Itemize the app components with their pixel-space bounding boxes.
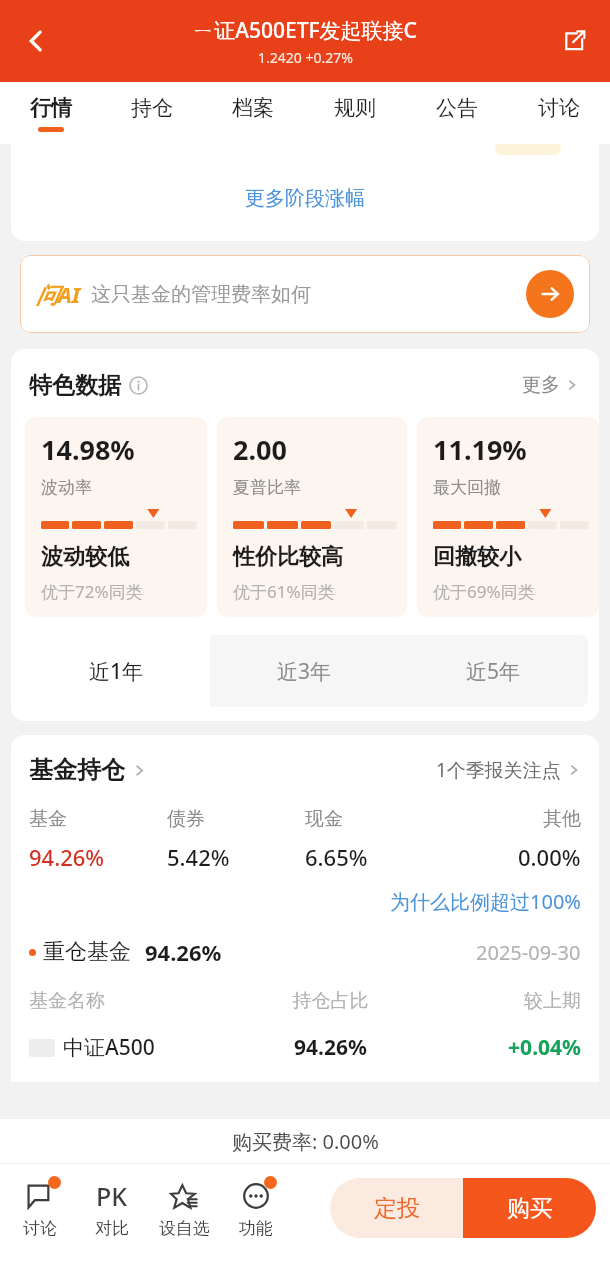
button[interactable]: 公告 (406, 82, 508, 144)
staticText: 近3年 (277, 657, 332, 686)
staticText: 定投 (374, 1194, 420, 1223)
staticText: 中证A500 (63, 1033, 247, 1062)
staticText: 优于72%同类 (41, 580, 143, 603)
staticText: 1.2420 +0.27% (258, 48, 353, 67)
staticText: 14.98% (41, 431, 135, 468)
staticText: 更多阶段涨幅 (245, 186, 365, 211)
staticText: 基金名称 (29, 989, 247, 1013)
button[interactable]: 更多阶段涨幅 (227, 176, 383, 221)
button[interactable]: 为什么比例超过100% (390, 888, 581, 915)
staticText: 波动率 (41, 477, 92, 498)
staticText: 94.26% (145, 937, 222, 967)
staticText: 问AI (36, 279, 81, 309)
staticText: 6.65% (305, 842, 368, 872)
staticText: 对比 (95, 1218, 129, 1239)
staticText: 档案 (232, 95, 274, 121)
staticText: 优于69%同类 (433, 580, 535, 603)
button[interactable]: 11.19% (417, 417, 599, 617)
staticText: 最大回撤 (433, 477, 501, 498)
button[interactable]: 2.00 (217, 417, 407, 617)
button[interactable]: 购买 (463, 1178, 596, 1238)
staticText: 这只基金的管理费率如何 (91, 282, 311, 307)
staticText: 功能 (239, 1218, 273, 1239)
staticText: 公告 (436, 95, 478, 121)
staticText: 夏普比率 (233, 477, 301, 498)
staticText: +0.04% (414, 1033, 581, 1062)
staticText: 11.19% (433, 431, 527, 468)
staticText: 较上期 (414, 989, 581, 1013)
staticText: 现金 (305, 807, 343, 831)
staticText: 基金 (29, 807, 67, 831)
button[interactable]: 1个季报关注点 (436, 757, 581, 783)
staticText: 购买费率: 0.00% (232, 1128, 379, 1155)
staticText: 1个季报关注点 (436, 757, 561, 783)
staticText: 购买 (507, 1194, 553, 1223)
staticText: 回撤较小 (433, 543, 521, 571)
button[interactable]: Compare (76, 1178, 148, 1239)
button[interactable]: 近5年 (399, 635, 588, 707)
button[interactable]: Discussion (4, 1178, 76, 1239)
staticText: 讨论 (538, 95, 580, 121)
staticText: 5.42% (167, 842, 230, 872)
staticText: 重仓基金 (43, 938, 131, 966)
staticText: 2.00 (233, 431, 287, 468)
button[interactable]: Back (10, 15, 62, 67)
staticText: 持仓占比 (247, 989, 414, 1013)
button[interactable]: 讨论 (508, 82, 610, 144)
staticText: 特色数据 (29, 371, 121, 400)
staticText: 持仓 (131, 95, 173, 121)
staticText: 行情 (30, 95, 72, 121)
button[interactable]: 近1年 (22, 635, 210, 707)
button[interactable]: 档案 (202, 82, 304, 144)
staticText: 性价比较高 (233, 543, 343, 571)
staticText: 设自选 (159, 1218, 210, 1239)
staticText: 优于61%同类 (233, 580, 335, 603)
staticText: ㄧ证A500ETF发起联接C (193, 16, 417, 45)
button[interactable]: Info (129, 376, 148, 395)
button[interactable]: 行情 (0, 82, 101, 144)
button[interactable]: 基金持仓 (29, 755, 147, 785)
button[interactable]: 持仓 (101, 82, 202, 144)
button[interactable]: 定投 (330, 1178, 463, 1238)
button[interactable]: Share (548, 15, 600, 67)
button[interactable]: Add to watchlist (148, 1178, 220, 1239)
button[interactable]: 更多 (516, 367, 585, 403)
staticText: 更多 (522, 373, 560, 397)
staticText: 其他 (543, 807, 581, 831)
staticText: 波动较低 (41, 543, 129, 571)
staticText: 94.26% (247, 1033, 414, 1062)
button[interactable]: 问AI (20, 255, 590, 333)
staticText: PK (96, 1179, 128, 1213)
button[interactable]: 近3年 (210, 635, 399, 707)
staticText: 债券 (167, 807, 205, 831)
staticText: 2025-09-30 (476, 939, 581, 966)
button[interactable]: Functions (220, 1178, 292, 1239)
staticText: 近5年 (466, 657, 521, 686)
staticText: 讨论 (23, 1218, 57, 1239)
staticText: 近1年 (89, 657, 144, 686)
staticText: 94.26% (29, 842, 105, 872)
button[interactable]: 14.98% (25, 417, 207, 617)
staticText: 0.00% (518, 842, 581, 872)
staticText: 基金持仓 (29, 755, 125, 785)
button[interactable]: 规则 (304, 82, 406, 144)
staticText: 规则 (334, 95, 376, 121)
